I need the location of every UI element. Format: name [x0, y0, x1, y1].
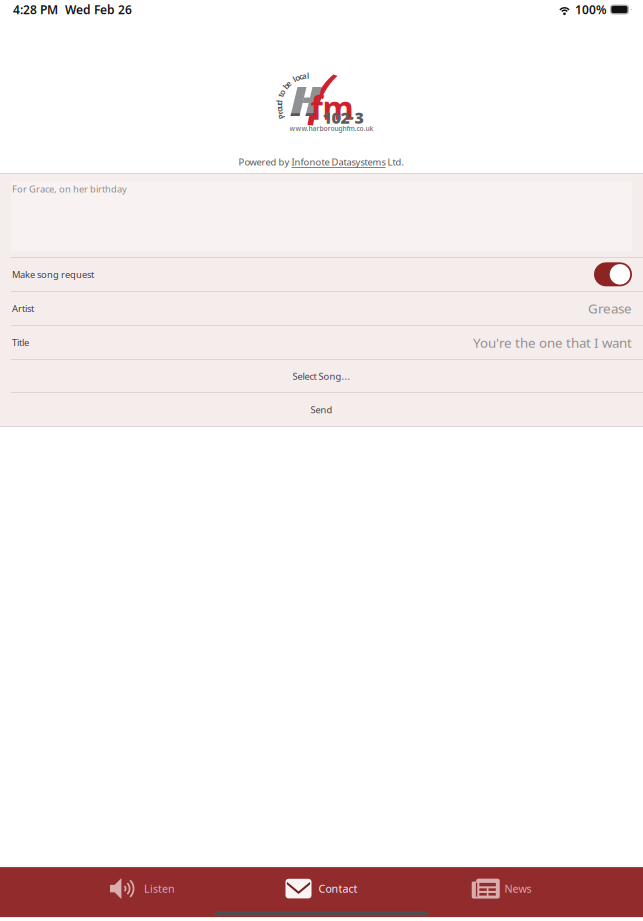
button[interactable]: News — [411, 874, 590, 903]
button[interactable]: Infonote Datasystems — [291, 156, 385, 168]
staticText: www.harboroughfm.co.uk — [289, 124, 373, 133]
staticText: t — [279, 90, 282, 101]
staticText: l — [293, 74, 295, 84]
staticText: Wed Feb 26 — [65, 1, 132, 17]
button[interactable]: Artist — [0, 292, 643, 325]
staticText: e — [286, 78, 291, 89]
staticText: u — [276, 101, 281, 111]
staticText: Select Song... — [292, 370, 350, 382]
staticText: Make song request — [12, 268, 94, 281]
staticText: You're the one that I want — [473, 334, 632, 351]
staticText: 100% — [575, 1, 607, 17]
staticText: P — [279, 111, 284, 122]
staticText — [279, 94, 281, 104]
staticText: Infonote Datasystems — [291, 156, 385, 168]
staticText: fm — [310, 86, 353, 128]
staticText — [283, 84, 285, 94]
staticText: 102·3 — [322, 107, 363, 128]
button[interactable]: Make song request — [594, 262, 632, 286]
staticText: o — [279, 87, 284, 97]
staticText: Title — [12, 336, 29, 349]
button[interactable]: Select Song... — [0, 360, 643, 392]
staticText: o — [277, 104, 282, 115]
staticText: Artist — [12, 302, 34, 315]
staticText: Ltd. — [385, 156, 404, 168]
staticText: r — [279, 108, 282, 118]
staticText: 4:28 PM — [13, 1, 58, 17]
button[interactable]: Contact — [232, 874, 411, 903]
staticText: Send — [310, 403, 332, 416]
staticText: For Grace, on her birthday — [12, 183, 127, 195]
button[interactable]: Title — [0, 326, 643, 359]
staticText: a — [302, 70, 307, 81]
staticText: Powered by — [238, 156, 291, 168]
staticText: Listen — [144, 881, 175, 896]
staticText: News — [504, 881, 531, 896]
staticText: l — [307, 70, 309, 81]
button[interactable]: Listen — [53, 874, 232, 903]
button[interactable]: Make song request — [0, 258, 643, 291]
button[interactable]: Send — [0, 393, 643, 426]
staticText: d — [277, 97, 282, 108]
staticText — [290, 76, 292, 86]
staticText: Grease — [588, 299, 632, 317]
staticText: o — [295, 72, 300, 83]
staticText: b — [283, 81, 288, 91]
staticText: Contact — [318, 881, 357, 896]
staticText: c — [299, 71, 303, 82]
